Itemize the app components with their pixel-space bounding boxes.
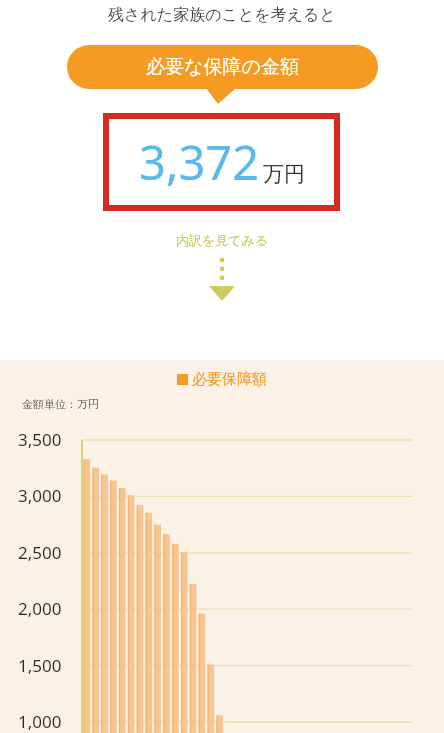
staticText: 3,500 [18,428,62,451]
staticText: 1,000 [18,710,62,733]
staticText: 金額単位：万円 [22,397,99,411]
staticText: 2,500 [18,541,62,564]
staticText: 必要な保障の金額 [146,55,299,79]
staticText: 3,000 [18,484,62,507]
staticText: 必要保障額 [192,370,267,389]
staticText: 万円 [263,161,305,187]
staticText: 3,372 [139,130,260,194]
button[interactable]: 内訳を見てみる [0,230,444,250]
staticText: 2,000 [18,597,62,620]
other: 内訳を見てみる [204,256,240,302]
staticText: 1,500 [18,654,62,677]
button[interactable]: 必要な保障の金額 [67,45,378,89]
staticText: 内訳を見てみる [176,232,269,248]
button[interactable]: 3,372 [109,119,334,205]
staticText: 残された家族のことを考えると [108,5,336,25]
